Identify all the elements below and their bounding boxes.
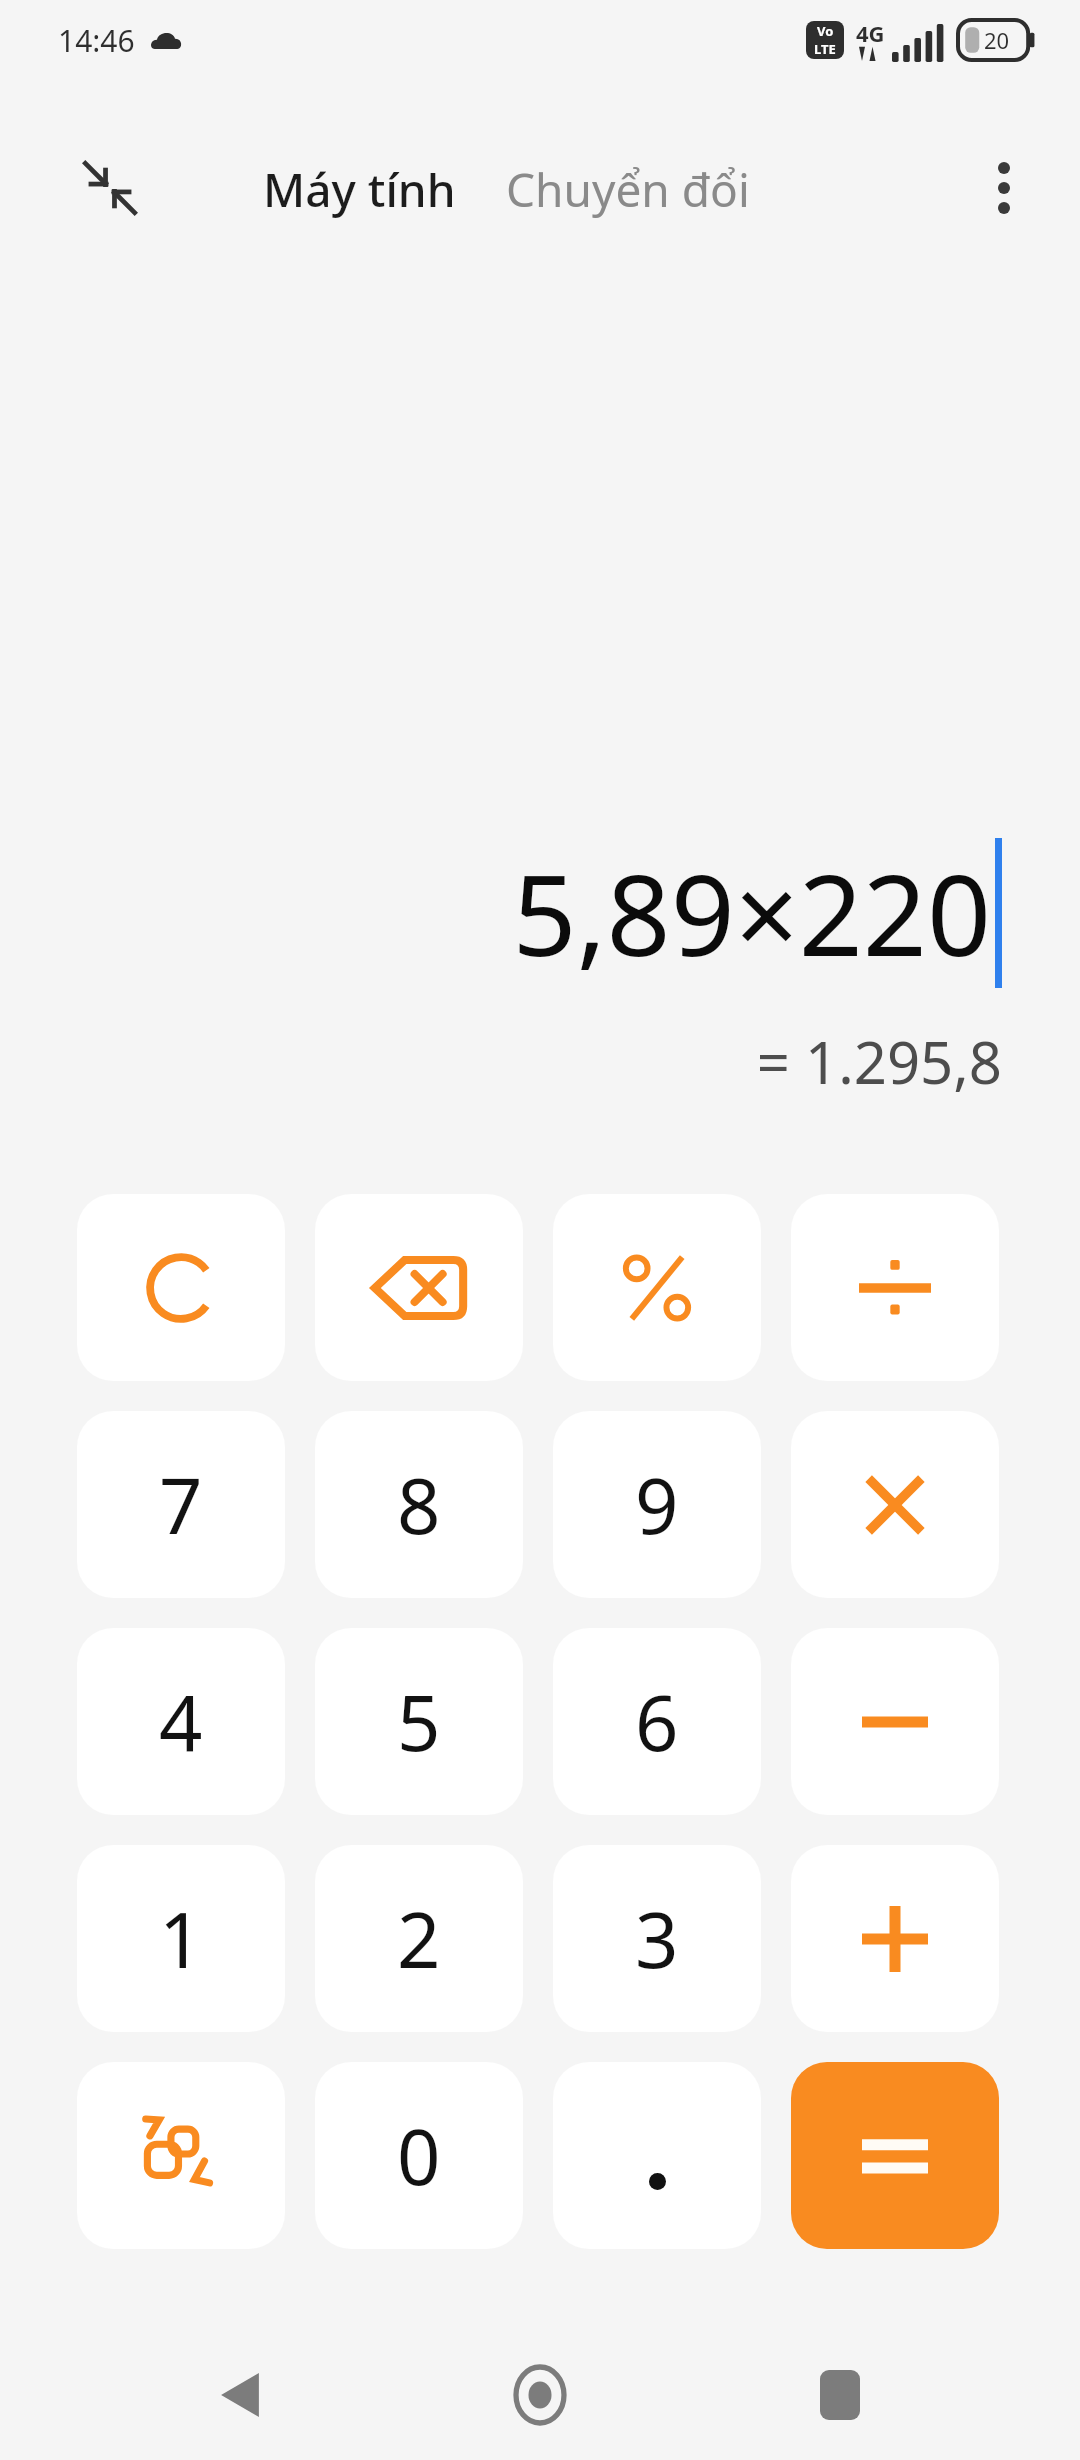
- button[interactable]: 4: [77, 1628, 285, 1815]
- button[interactable]: Recents: [780, 2335, 900, 2455]
- button[interactable]: Minus: [791, 1628, 999, 1815]
- button[interactable]: More options: [956, 140, 1052, 236]
- button[interactable]: 0: [315, 2062, 523, 2249]
- button[interactable]: Multiply: [791, 1411, 999, 1598]
- button[interactable]: Máy tính: [255, 148, 464, 231]
- staticText: 5: [397, 1670, 441, 1774]
- staticText: 7: [159, 1453, 203, 1557]
- button[interactable]: [553, 2062, 761, 2249]
- staticText: Chuyển đổi: [506, 158, 750, 221]
- button[interactable]: Chuyển đổi: [498, 148, 758, 231]
- staticText: 6: [635, 1670, 679, 1774]
- staticText: 14:46: [58, 20, 135, 61]
- staticText: 3: [635, 1887, 679, 1991]
- button[interactable]: Collapse: [62, 140, 158, 236]
- button[interactable]: Backspace: [315, 1194, 523, 1381]
- staticText: Vo: [817, 22, 834, 40]
- button[interactable]: 3: [553, 1845, 761, 2032]
- button[interactable]: 2: [315, 1845, 523, 2032]
- button[interactable]: 7: [77, 1411, 285, 1598]
- staticText: 8: [397, 1453, 441, 1557]
- staticText: 4G: [856, 18, 885, 48]
- button[interactable]: 1: [77, 1845, 285, 2032]
- staticText: 1: [159, 1887, 203, 1991]
- staticText: 5,89×220: [512, 836, 991, 989]
- button[interactable]: 8: [315, 1411, 523, 1598]
- staticText: LTE: [814, 40, 836, 58]
- button[interactable]: Equals: [791, 2062, 999, 2249]
- staticText: 0: [397, 2104, 441, 2208]
- button[interactable]: Percent: [553, 1194, 761, 1381]
- staticText: 9: [635, 1453, 679, 1557]
- staticText: 4: [159, 1670, 203, 1774]
- button[interactable]: Plus: [791, 1845, 999, 2032]
- button[interactable]: Back: [180, 2335, 300, 2455]
- staticText: = 1.295,8: [756, 1022, 1002, 1101]
- button[interactable]: 6: [553, 1628, 761, 1815]
- button[interactable]: Scientific functions: [77, 2062, 285, 2249]
- button[interactable]: Divide: [791, 1194, 999, 1381]
- staticText: 20: [984, 25, 1010, 55]
- button[interactable]: Clear: [77, 1194, 285, 1381]
- button[interactable]: Home: [480, 2335, 600, 2455]
- staticText: 2: [397, 1887, 441, 1991]
- button[interactable]: 5: [315, 1628, 523, 1815]
- button[interactable]: 9: [553, 1411, 761, 1598]
- staticText: Máy tính: [263, 158, 456, 221]
